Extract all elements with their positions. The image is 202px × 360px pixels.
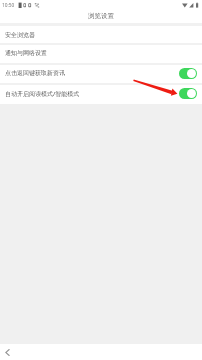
button[interactable]: 安全浏览器 — [0, 26, 202, 43]
button[interactable]: 通知与网络设置 — [0, 43, 202, 63]
button[interactable]: Back — [2, 347, 13, 358]
button[interactable]: 自动开启阅读模式/智能模式 — [0, 83, 202, 104]
staticText: 10:50 — [2, 2, 15, 9]
button[interactable]: 点击返回键获取新资讯, on — [179, 68, 197, 79]
button[interactable]: 自动开启阅读模式/智能模式, on — [179, 88, 197, 99]
staticText: 安全浏览器 — [5, 31, 35, 39]
staticText: 浏览设置 — [88, 12, 114, 20]
button[interactable]: 点击返回键获取新资讯 — [0, 63, 202, 83]
staticText: 点击返回键获取新资讯 — [5, 69, 65, 77]
staticText: 自动开启阅读模式/智能模式 — [5, 90, 80, 98]
staticText: 通知与网络设置 — [5, 49, 47, 57]
